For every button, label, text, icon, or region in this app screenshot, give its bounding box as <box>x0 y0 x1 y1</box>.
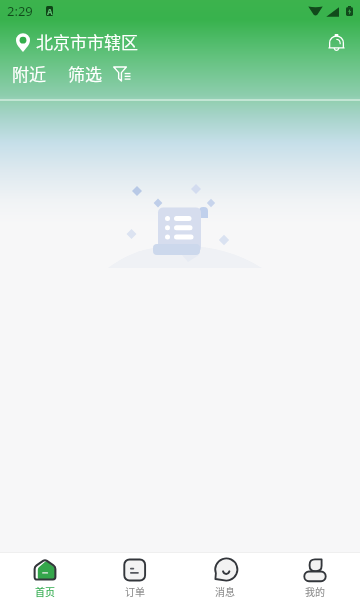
button[interactable]: 筛选 <box>68 61 131 86</box>
staticText: 筛选 <box>68 61 102 86</box>
button[interactable]: 首页 <box>0 553 90 598</box>
staticText: 2:29 <box>7 2 33 20</box>
staticText: 我的 <box>305 584 325 598</box>
button[interactable]: 订单 <box>90 553 180 598</box>
staticText: 首页 <box>35 584 55 598</box>
button[interactable]: 我的 <box>270 553 360 598</box>
staticText: 消息 <box>215 584 235 598</box>
staticText: 北京市市辖区 <box>36 29 138 54</box>
staticText: 附近 <box>12 61 46 86</box>
button[interactable]: 北京市市辖区 <box>16 29 138 54</box>
button[interactable]: Notifications <box>322 28 350 56</box>
staticText: A <box>47 6 53 16</box>
staticText: 订单 <box>125 584 145 598</box>
button[interactable]: 附近 <box>12 61 46 86</box>
button[interactable]: 消息 <box>180 553 270 598</box>
